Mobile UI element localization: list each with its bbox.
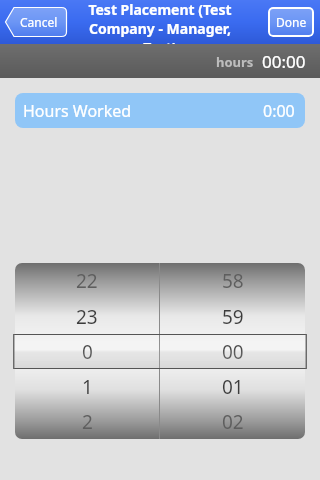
staticText: 58 — [222, 268, 244, 294]
staticText: 0 — [82, 339, 93, 365]
staticText: 1 — [82, 374, 93, 400]
button[interactable]: 22 — [15, 263, 305, 439]
staticText: Cancel — [20, 14, 58, 30]
staticText: hours — [216, 53, 254, 71]
staticText: 01 — [222, 374, 244, 400]
button[interactable]: Hours Worked — [15, 93, 305, 128]
staticText: Company - Manager, Test) — [74, 19, 246, 44]
staticText: Hours Worked — [23, 100, 132, 122]
staticText: 00:00 — [262, 50, 306, 73]
staticText: Test Placement (Test — [88, 0, 232, 19]
staticText: Done — [276, 14, 307, 30]
staticText: 22 — [76, 268, 98, 294]
staticText: 2 — [82, 409, 93, 435]
button[interactable]: Done — [268, 7, 314, 37]
staticText: 59 — [222, 304, 244, 330]
staticText: 02 — [222, 409, 244, 435]
staticText: 0:00 — [263, 100, 295, 122]
button[interactable]: Cancel — [5, 7, 67, 37]
staticText: 23 — [76, 304, 98, 330]
staticText: 00 — [222, 339, 244, 365]
